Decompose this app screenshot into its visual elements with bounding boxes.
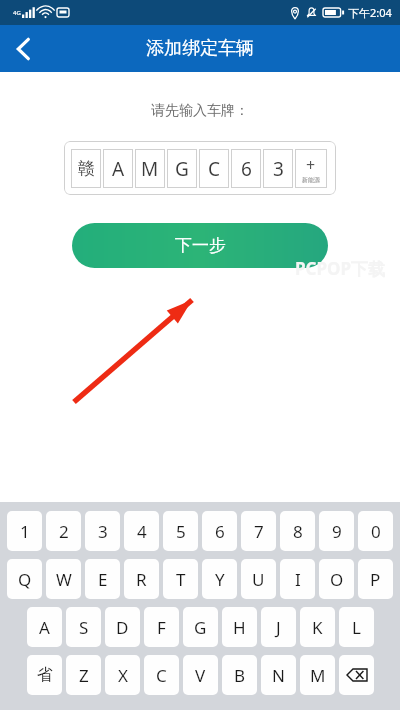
staticText: C xyxy=(156,664,167,687)
staticText: 3 xyxy=(273,156,284,182)
button[interactable]: L xyxy=(339,607,374,647)
button[interactable]: K xyxy=(300,607,335,647)
staticText: O xyxy=(330,568,344,591)
staticText: 7 xyxy=(254,520,264,543)
staticText: B xyxy=(234,664,246,687)
staticText: R xyxy=(136,568,147,591)
staticText: K xyxy=(312,616,323,639)
button[interactable]: B xyxy=(222,655,257,695)
staticText: E xyxy=(98,568,108,591)
button[interactable]: X xyxy=(105,655,140,695)
button[interactable]: A xyxy=(27,607,62,647)
button[interactable]: 2 xyxy=(46,511,81,551)
button[interactable]: A xyxy=(103,149,133,188)
staticText: 6 xyxy=(241,156,252,182)
button[interactable]: J xyxy=(261,607,296,647)
staticText: 下午2:04 xyxy=(348,5,392,20)
button[interactable]: I xyxy=(280,559,315,599)
staticText: F xyxy=(157,616,166,639)
staticText: 赣 xyxy=(78,158,95,179)
staticText: 5 xyxy=(176,520,186,543)
staticText: L xyxy=(352,616,361,639)
staticText: 省 xyxy=(37,665,53,685)
button[interactable]: H xyxy=(222,607,257,647)
button[interactable]: C xyxy=(199,149,229,188)
staticText: 下一步 xyxy=(175,235,226,256)
button[interactable]: 6 xyxy=(202,511,237,551)
staticText: 4G xyxy=(13,9,21,17)
staticText: PCPOP下载 xyxy=(295,257,386,280)
staticText: P xyxy=(370,568,381,591)
button[interactable]: 赣 xyxy=(71,149,101,188)
button[interactable]: C xyxy=(144,655,179,695)
staticText: Q xyxy=(18,568,32,591)
button[interactable]: M xyxy=(300,655,335,695)
staticText: Z xyxy=(79,664,89,687)
button[interactable]: D xyxy=(105,607,140,647)
button[interactable]: 1 xyxy=(7,511,42,551)
button[interactable]: Back xyxy=(0,25,46,72)
staticText: Y xyxy=(215,568,225,591)
button[interactable]: G xyxy=(167,149,197,188)
button[interactable]: M xyxy=(135,149,165,188)
staticText: 新能源 xyxy=(302,176,320,184)
staticText: C xyxy=(208,156,221,182)
staticText: 8 xyxy=(293,520,303,543)
button[interactable]: P xyxy=(358,559,393,599)
staticText: S xyxy=(79,616,89,639)
button[interactable]: Delete xyxy=(339,655,374,695)
button[interactable]: 下一步 xyxy=(72,223,328,268)
button[interactable]: 3 xyxy=(263,149,293,188)
staticText: I xyxy=(295,568,301,591)
staticText: M xyxy=(141,156,159,182)
staticText: M xyxy=(310,664,326,687)
staticText: 添加绑定车辆 xyxy=(146,37,254,60)
staticText: T xyxy=(176,568,186,591)
button[interactable]: Y xyxy=(202,559,237,599)
button[interactable]: G xyxy=(183,607,218,647)
button[interactable]: 5 xyxy=(163,511,198,551)
button[interactable]: Z xyxy=(66,655,101,695)
button[interactable]: 4 xyxy=(124,511,159,551)
staticText: 6 xyxy=(215,520,225,543)
staticText: G xyxy=(175,156,189,182)
staticText: D xyxy=(116,616,129,639)
staticText: U xyxy=(252,568,265,591)
button[interactable]: F xyxy=(144,607,179,647)
staticText: 9 xyxy=(332,520,342,543)
staticText: A xyxy=(112,156,125,182)
staticText: W xyxy=(56,568,72,591)
staticText: 1 xyxy=(20,520,30,543)
staticText: 0 xyxy=(371,520,381,543)
staticText: 请先输入车牌： xyxy=(0,102,400,120)
button[interactable]: 0 xyxy=(358,511,393,551)
button[interactable]: N xyxy=(261,655,296,695)
button[interactable]: 3 xyxy=(85,511,120,551)
staticText: + xyxy=(306,154,316,176)
staticText: 4 xyxy=(137,520,147,543)
button[interactable]: U xyxy=(241,559,276,599)
button[interactable]: 7 xyxy=(241,511,276,551)
staticText: 3 xyxy=(98,520,108,543)
button[interactable]: Q xyxy=(7,559,42,599)
staticText: V xyxy=(195,664,206,687)
button[interactable]: 8 xyxy=(280,511,315,551)
staticText: J xyxy=(276,616,281,639)
button[interactable]: 省 xyxy=(27,655,62,695)
staticText: 2 xyxy=(59,520,69,543)
button[interactable]: W xyxy=(46,559,81,599)
button[interactable]: 9 xyxy=(319,511,354,551)
button[interactable]: O xyxy=(319,559,354,599)
button[interactable]: E xyxy=(85,559,120,599)
button[interactable]: R xyxy=(124,559,159,599)
staticText: H xyxy=(233,616,246,639)
button[interactable]: S xyxy=(66,607,101,647)
staticText: G xyxy=(194,616,207,639)
staticText: N xyxy=(272,664,285,687)
staticText: A xyxy=(39,616,50,639)
button[interactable]: V xyxy=(183,655,218,695)
staticText: X xyxy=(118,664,128,687)
button[interactable]: 6 xyxy=(231,149,261,188)
button[interactable]: T xyxy=(163,559,198,599)
button[interactable]: + xyxy=(295,149,327,188)
